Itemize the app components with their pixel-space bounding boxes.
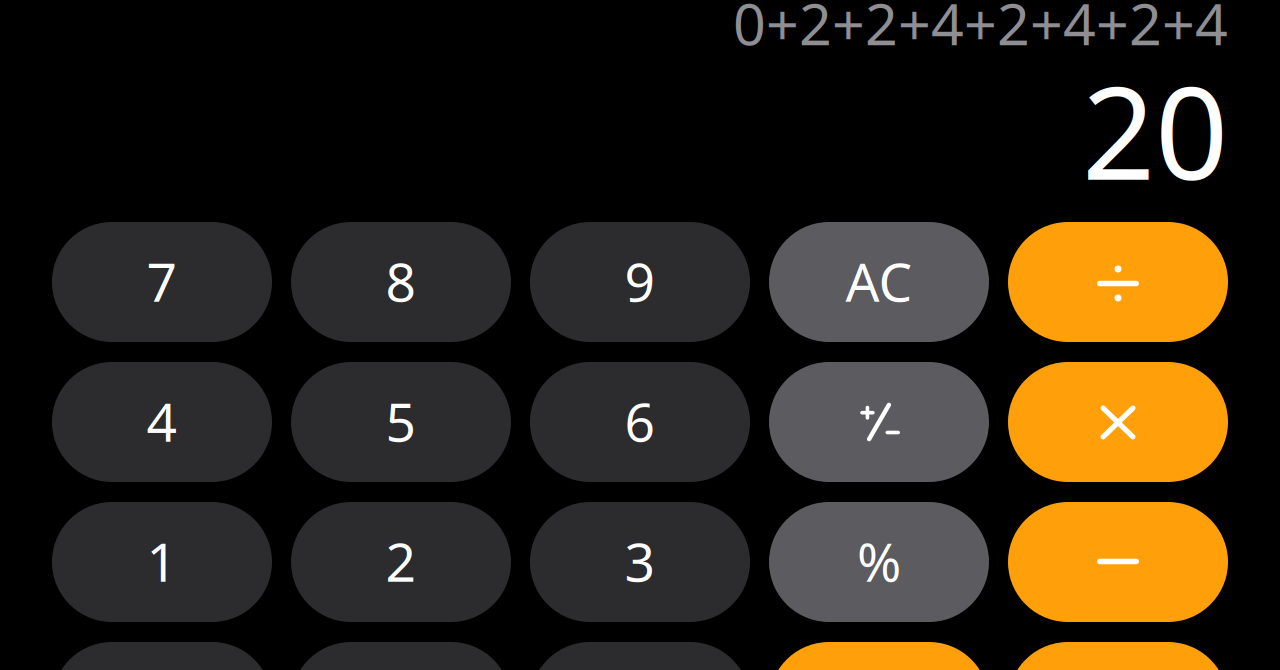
button[interactable]: 6: [530, 362, 750, 482]
button[interactable]: Plus: [769, 642, 989, 670]
button[interactable]: 2: [291, 502, 511, 622]
staticText: 0+2+2+4+2+4+2+4: [733, 0, 1228, 61]
button[interactable]: 5: [291, 362, 511, 482]
button[interactable]: 7: [52, 222, 272, 342]
button[interactable]: Equals: [1008, 642, 1228, 670]
staticText: AC: [845, 246, 912, 316]
staticText: %: [857, 526, 901, 596]
staticText: 20: [1082, 45, 1228, 215]
staticText: 2: [385, 526, 416, 596]
button[interactable]: 4: [52, 362, 272, 482]
staticText: 3: [624, 526, 655, 596]
button[interactable]: Plus or minus: [769, 362, 989, 482]
button[interactable]: 9: [530, 222, 750, 342]
staticText: 4: [146, 386, 177, 456]
staticText: 9: [624, 246, 655, 316]
button[interactable]: ⌫: [530, 642, 750, 670]
button[interactable]: 3: [530, 502, 750, 622]
button[interactable]: Minus: [1008, 502, 1228, 622]
button[interactable]: 0: [52, 642, 272, 670]
button[interactable]: %: [769, 502, 989, 622]
staticText: 6: [624, 386, 655, 456]
button[interactable]: AC: [769, 222, 989, 342]
staticText: 8: [385, 246, 416, 316]
button[interactable]: .: [291, 642, 511, 670]
staticText: 5: [385, 386, 416, 456]
staticText: 7: [146, 246, 177, 316]
button[interactable]: 8: [291, 222, 511, 342]
button[interactable]: Multiply: [1008, 362, 1228, 482]
button[interactable]: Divide: [1008, 222, 1228, 342]
button[interactable]: 1: [52, 502, 272, 622]
staticText: 1: [146, 526, 177, 596]
